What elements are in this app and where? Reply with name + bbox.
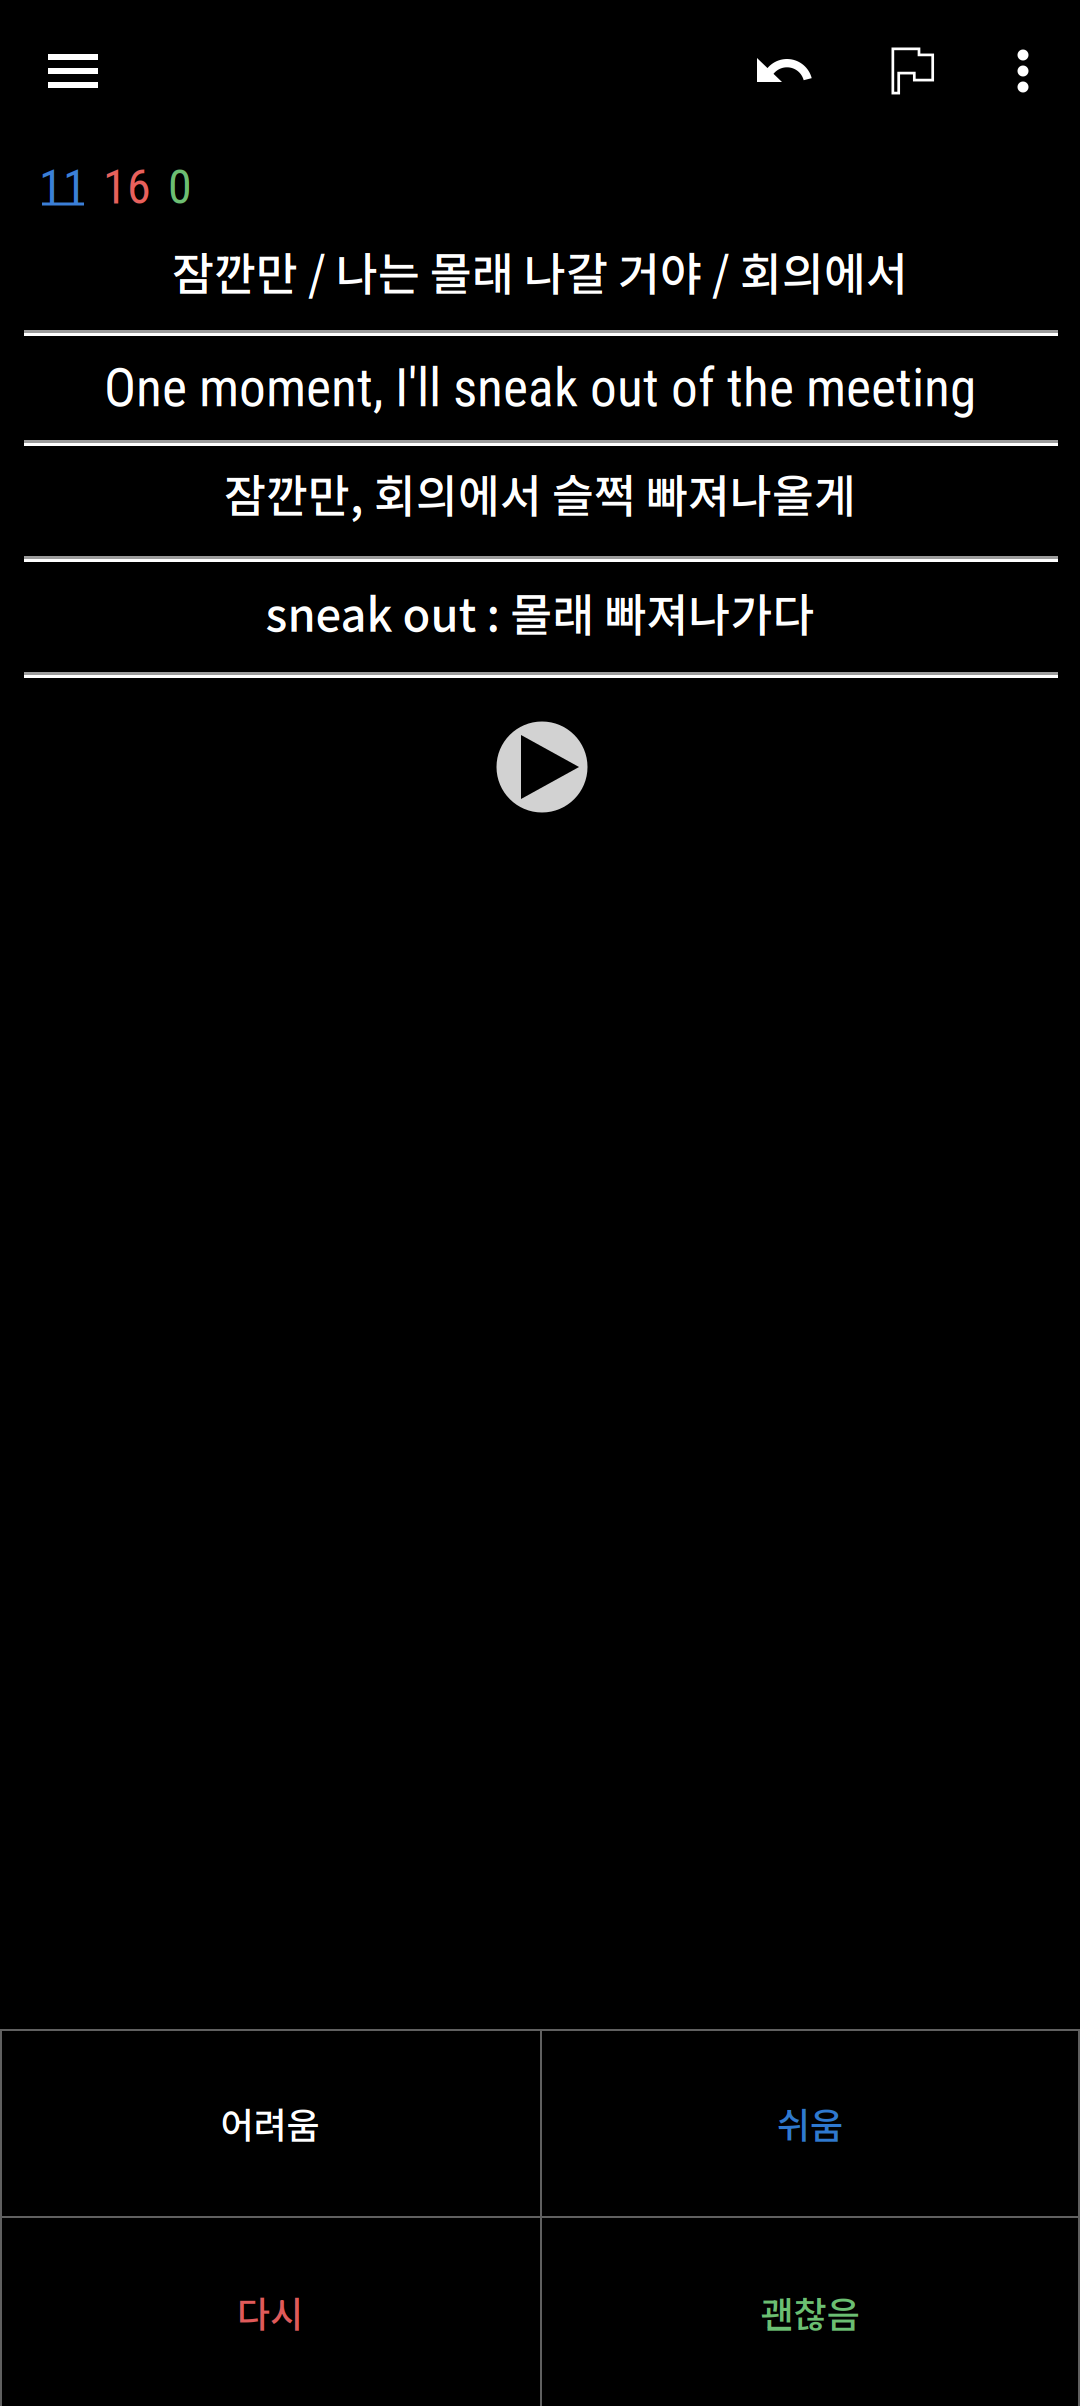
button[interactable]: Review cards: 0	[160, 167, 200, 207]
staticText: 잠깐만, 회의에서 슬쩍 빠져나올게	[224, 460, 856, 526]
staticText: 0	[168, 159, 192, 215]
button[interactable]: Undo	[730, 16, 840, 126]
staticText: 쉬움	[777, 2097, 843, 2149]
button[interactable]: Play audio	[482, 707, 602, 827]
button[interactable]: 괜찮음	[540, 2217, 1080, 2406]
button[interactable]: More options	[968, 16, 1078, 126]
staticText: 다시	[237, 2286, 303, 2338]
button[interactable]: Menu	[18, 16, 128, 126]
staticText: 괜찮음	[760, 2286, 859, 2338]
staticText: sneak out : 몰래 빠져나가다	[265, 579, 814, 645]
staticText: 11	[39, 159, 87, 215]
button[interactable]: 어려움	[0, 2029, 540, 2217]
button[interactable]: Flag card	[858, 16, 968, 126]
staticText: One moment, I'll sneak out of the meetin…	[104, 357, 976, 419]
button[interactable]: New cards: 11	[33, 167, 93, 207]
button[interactable]: 쉬움	[540, 2029, 1080, 2217]
button[interactable]: Learning cards: 16	[97, 167, 157, 207]
staticText: 16	[103, 159, 151, 215]
button[interactable]: 다시	[0, 2217, 540, 2406]
staticText: 잠깐만 / 나는 몰래 나갈 거야 / 회의에서	[172, 238, 908, 304]
staticText: 어려움	[220, 2097, 319, 2149]
